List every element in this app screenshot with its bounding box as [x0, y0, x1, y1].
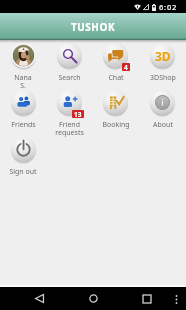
staticText: Chat [108, 73, 124, 83]
button[interactable]: Recent apps [134, 287, 160, 310]
staticText: 4 [124, 63, 128, 71]
button[interactable]: Back [26, 287, 52, 310]
button[interactable]: Search [46, 40, 92, 310]
button[interactable]: Friends [0, 87, 46, 310]
staticText: About [153, 120, 173, 130]
button[interactable]: Booking [92, 87, 139, 310]
button[interactable]: More options [166, 289, 186, 309]
staticText: Sign out [9, 167, 37, 177]
staticText: Nana S. [14, 73, 32, 90]
staticText: 6:02 [159, 2, 178, 12]
staticText: 3D [155, 48, 171, 64]
staticText: 13 [74, 110, 82, 118]
staticText: Search [58, 73, 81, 83]
button[interactable]: About [139, 87, 186, 310]
button[interactable]: 13 [46, 87, 92, 310]
staticText: TUSHOK [71, 20, 116, 34]
staticText: Booking [102, 120, 130, 130]
button[interactable]: Nana S. [0, 40, 46, 310]
staticText: Friends [11, 120, 36, 130]
button[interactable]: Home [80, 287, 106, 310]
button[interactable]: Sign out [0, 134, 46, 310]
button[interactable]: 3D [139, 40, 186, 310]
staticText: Friend requests [55, 120, 84, 137]
button[interactable]: 4 [92, 40, 139, 310]
staticText: 3DShop [150, 73, 176, 83]
